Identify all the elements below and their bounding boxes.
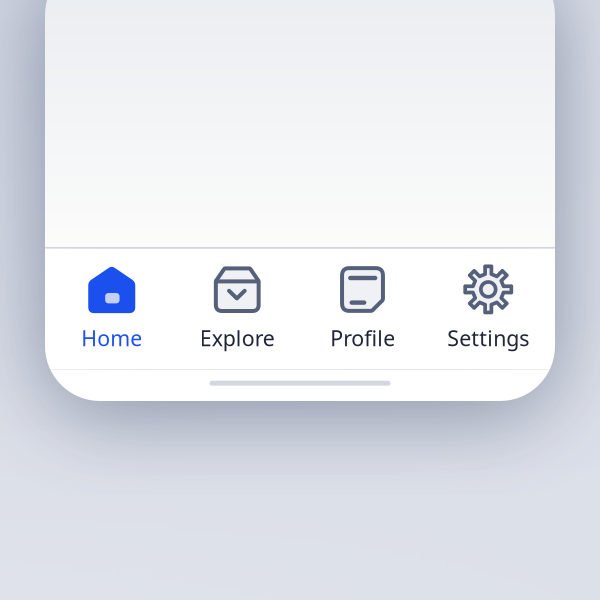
button[interactable]: Explore	[174, 248, 300, 369]
staticText: Explore	[200, 324, 275, 352]
staticText: Profile	[330, 324, 395, 352]
staticText: Home	[81, 324, 142, 352]
button[interactable]: Profile	[300, 248, 425, 369]
button[interactable]: Home	[49, 248, 174, 369]
staticText: Settings	[447, 324, 529, 352]
button[interactable]: Settings	[425, 248, 551, 369]
